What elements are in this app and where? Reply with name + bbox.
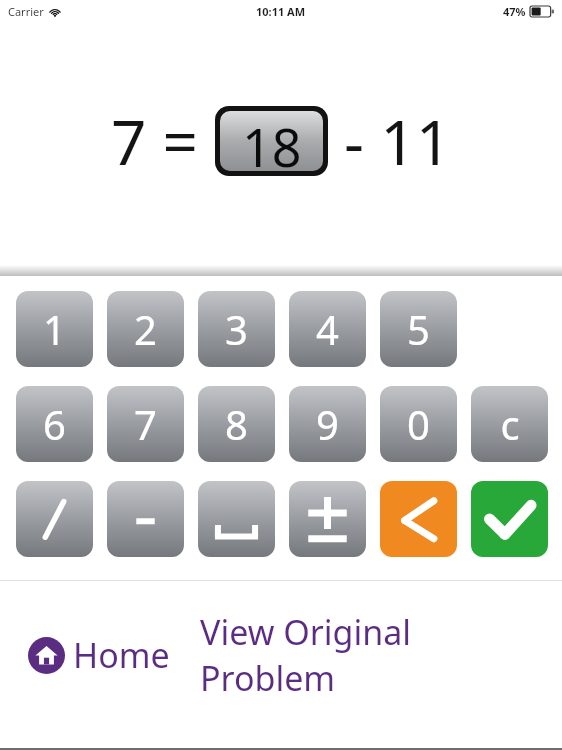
button[interactable]: Space xyxy=(198,481,275,557)
button[interactable]: 0 xyxy=(380,386,457,462)
staticText: 7 = xyxy=(111,99,215,183)
button[interactable]: 18 xyxy=(215,106,328,176)
staticText: 10:11 AM xyxy=(256,4,306,19)
staticText: Home xyxy=(73,632,170,678)
staticText: 2 xyxy=(134,302,157,356)
button[interactable]: 7 xyxy=(107,386,184,462)
button[interactable]: Plus or minus xyxy=(289,481,366,557)
button[interactable]: 3 xyxy=(198,291,275,367)
staticText: 8 xyxy=(225,397,248,451)
staticText: 5 xyxy=(407,302,430,356)
button[interactable]: 8 xyxy=(198,386,275,462)
staticText: 4 xyxy=(316,302,339,356)
staticText: - 11 xyxy=(328,99,452,183)
staticText: Carrier xyxy=(8,4,44,19)
button[interactable]: Backspace xyxy=(380,481,457,557)
button[interactable]: Divide xyxy=(16,481,93,557)
staticText: 18 xyxy=(242,111,302,171)
button[interactable]: 6 xyxy=(16,386,93,462)
button[interactable]: 2 xyxy=(107,291,184,367)
staticText: 3 xyxy=(225,302,248,356)
button[interactable]: Submit answer xyxy=(471,481,548,557)
staticText: View Original Problem xyxy=(200,609,534,701)
staticText: 7 xyxy=(134,397,157,451)
staticText: 9 xyxy=(316,397,339,451)
button[interactable]: 9 xyxy=(289,386,366,462)
button[interactable]: Minus xyxy=(107,481,184,557)
staticText: 47% xyxy=(503,4,526,19)
staticText: 1 xyxy=(43,302,66,356)
staticText: 0 xyxy=(407,397,430,451)
staticText: c xyxy=(500,397,520,451)
button[interactable]: 4 xyxy=(289,291,366,367)
button[interactable]: View Original Problem xyxy=(198,607,536,703)
staticText: 6 xyxy=(43,397,66,451)
button[interactable]: 1 xyxy=(16,291,93,367)
button[interactable]: 5 xyxy=(380,291,457,367)
button[interactable]: c xyxy=(471,386,548,462)
button[interactable]: Home xyxy=(26,630,172,680)
